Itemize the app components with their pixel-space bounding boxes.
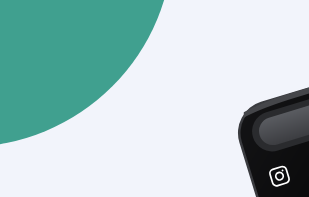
button[interactable]: Hero illustration with teal shape and ph… bbox=[0, 0, 309, 197]
